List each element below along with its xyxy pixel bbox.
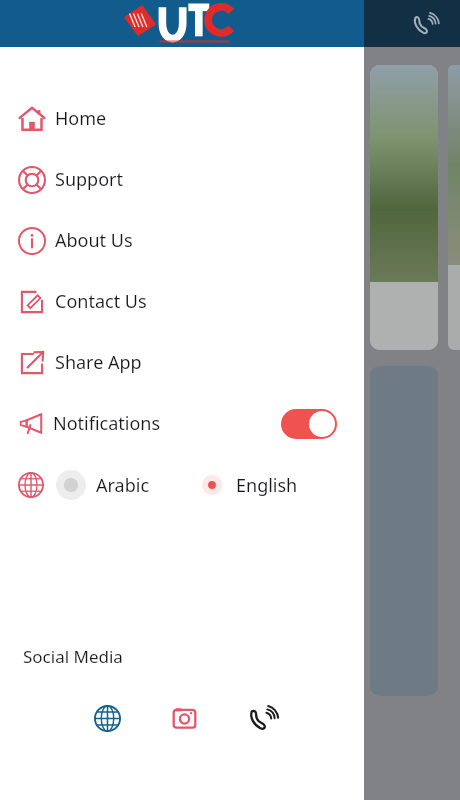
staticText: Notifications — [53, 411, 161, 436]
staticText: Share App — [55, 350, 142, 375]
button[interactable]: Notifications toggle — [281, 409, 337, 439]
staticText: Arabic — [96, 473, 150, 498]
button[interactable]: Support — [0, 149, 364, 210]
button[interactable] — [448, 65, 460, 350]
staticText: Contact Us — [55, 289, 147, 314]
button[interactable]: Website — [79, 690, 135, 746]
staticText: English — [236, 473, 298, 498]
staticText: About Us — [55, 228, 133, 253]
button[interactable]: Notifications — [0, 393, 364, 454]
button[interactable]: Arabic — [56, 470, 150, 500]
button[interactable]: Home — [0, 88, 364, 149]
button[interactable]: Call us — [233, 690, 289, 746]
staticText: Home — [55, 106, 107, 131]
button[interactable]: About Us — [0, 210, 364, 271]
button[interactable]: Contact Us — [0, 271, 364, 332]
button[interactable] — [370, 65, 438, 350]
staticText: Support — [55, 167, 123, 192]
button[interactable]: Instagram — [156, 690, 212, 746]
button[interactable]: Call — [404, 4, 444, 44]
button[interactable]: English — [198, 471, 298, 499]
staticText: Social Media — [23, 645, 123, 668]
button[interactable]: Share App — [0, 332, 364, 393]
